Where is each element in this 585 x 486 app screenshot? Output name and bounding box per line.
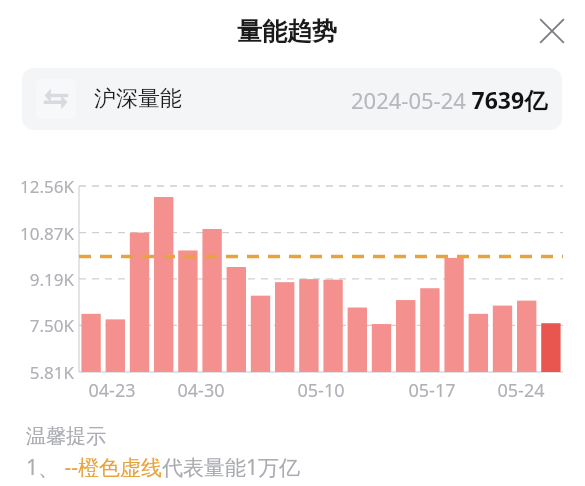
staticText: 12.56K: [14, 175, 74, 198]
staticText: 04-30: [166, 378, 236, 403]
staticText: 05-24: [486, 378, 556, 403]
staticText: 1、 --橙色虚线代表量能1万亿: [26, 453, 301, 482]
button[interactable]: Close: [531, 10, 573, 52]
staticText: 沪深量能: [94, 85, 182, 113]
staticText: 05-10: [286, 378, 356, 403]
staticText: 04-23: [77, 378, 147, 403]
staticText: 7.50K: [14, 314, 74, 337]
staticText: 2024-05-24 7639亿: [351, 84, 548, 115]
staticText: 9.19K: [14, 268, 74, 291]
staticText: 量能趋势: [237, 16, 337, 47]
staticText: 05-17: [397, 378, 467, 403]
staticText: 5.81K: [14, 361, 74, 384]
button[interactable]: 沪深量能: [22, 68, 562, 130]
staticText: 10.87K: [14, 222, 74, 245]
staticText: 温馨提示: [26, 424, 106, 449]
